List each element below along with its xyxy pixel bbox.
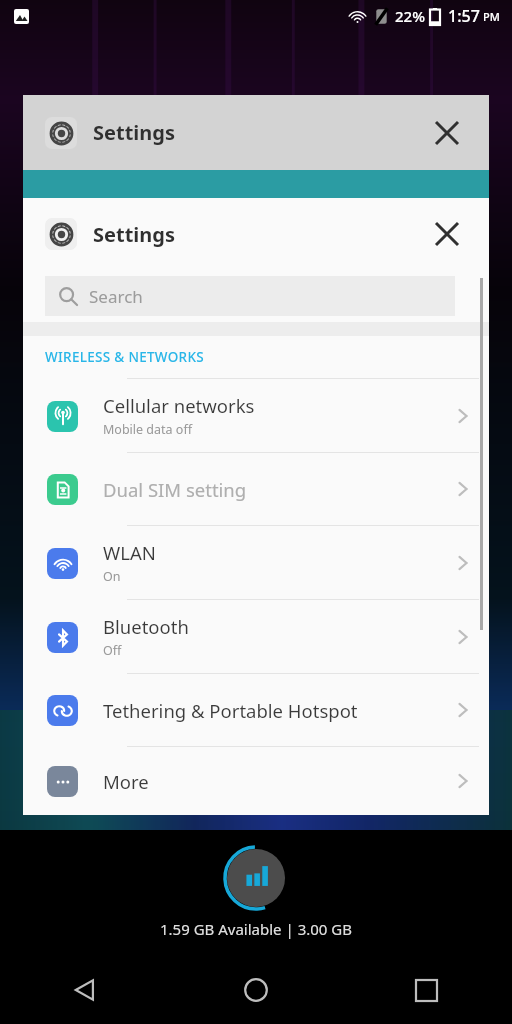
button[interactable]: Tethering & Portable Hotspot	[23, 674, 489, 746]
staticText: Mobile data off	[103, 421, 192, 438]
button[interactable]: Close	[427, 113, 467, 153]
staticText: Bluetooth	[103, 614, 189, 639]
staticText: On	[103, 568, 121, 585]
staticText: Off	[103, 642, 122, 659]
button[interactable]: Close	[427, 214, 467, 254]
button[interactable]: Back	[0, 956, 170, 1024]
button[interactable]: More	[23, 747, 489, 815]
staticText: Settings	[93, 119, 175, 146]
staticText: WLAN	[103, 540, 156, 565]
button[interactable]: Home	[170, 956, 341, 1024]
staticText: Settings	[93, 221, 175, 248]
staticText: WIRELESS & NETWORKS	[45, 348, 205, 366]
staticText: 1.59 GB Available | 3.00 GB	[160, 919, 352, 939]
staticText: More	[103, 769, 149, 794]
staticText: PM	[483, 9, 500, 24]
button[interactable]: Memory usage	[223, 845, 289, 911]
staticText: 22%	[395, 6, 425, 26]
button[interactable]: Recents	[341, 956, 512, 1024]
staticText: Dual SIM setting	[103, 477, 247, 502]
button[interactable]: Dual SIM setting	[23, 453, 489, 525]
staticText: Tethering & Portable Hotspot	[103, 698, 358, 723]
button[interactable]: Cellular networks	[23, 379, 489, 452]
staticText: 1:57	[448, 5, 480, 27]
button[interactable]: Search	[45, 276, 455, 316]
staticText: Search	[89, 285, 143, 308]
button[interactable]: WLAN	[23, 526, 489, 599]
button[interactable]: Bluetooth	[23, 600, 489, 673]
staticText: Cellular networks	[103, 393, 255, 418]
